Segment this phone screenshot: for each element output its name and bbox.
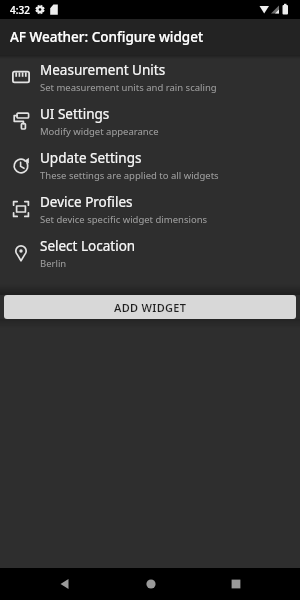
button[interactable] (193, 568, 278, 600)
staticText: Set device specific widget dimensions (40, 213, 208, 226)
button[interactable]: Select Location (0, 231, 300, 275)
staticText: UI Settings (40, 105, 110, 123)
button[interactable]: Measurement Units (0, 55, 300, 99)
staticText: Set measurement units and rain scaling (40, 81, 217, 94)
button[interactable] (108, 568, 193, 600)
staticText: 4:32 (10, 3, 30, 17)
button[interactable]: ADD WIDGET (4, 295, 296, 319)
button[interactable]: UI Settings (0, 99, 300, 143)
staticText: Measurement Units (40, 61, 166, 79)
staticText: Berlin (40, 257, 67, 270)
staticText: AF Weather: Configure widget (10, 28, 204, 46)
staticText: Device Profiles (40, 193, 133, 211)
staticText: ADD WIDGET (114, 300, 187, 315)
staticText: These settings are applied to all widget… (40, 169, 219, 182)
staticText: Modify widget appearance (40, 125, 159, 138)
button[interactable]: Device Profiles (0, 187, 300, 231)
staticText: Update Settings (40, 149, 142, 167)
button[interactable]: Update Settings (0, 143, 300, 187)
staticText: Select Location (40, 237, 136, 255)
button[interactable] (22, 568, 108, 600)
